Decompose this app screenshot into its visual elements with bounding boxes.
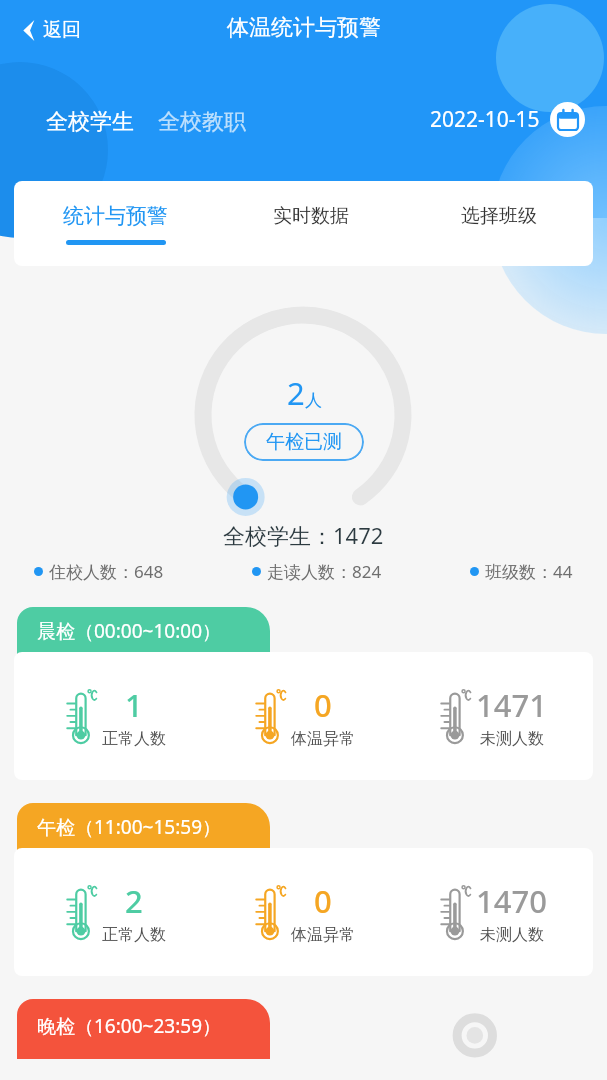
staticText: 全校教职 <box>158 108 246 136</box>
staticText: 班级数：44 <box>485 560 573 583</box>
staticText: 体温异常 <box>291 925 355 945</box>
staticText: 1 <box>125 684 143 726</box>
button[interactable]: 晚检（16:00~23:59） <box>17 999 270 1059</box>
staticText: 2022-10-15 <box>430 105 540 134</box>
staticText: 午检已测 <box>266 430 342 454</box>
staticText: 体温统计与预警 <box>227 14 381 42</box>
button[interactable]: Select date <box>426 98 589 141</box>
button[interactable]: 实时数据 <box>217 181 405 266</box>
staticText: 1471 <box>476 684 547 726</box>
staticText: 体温异常 <box>291 729 355 749</box>
staticText: 全校学生 <box>46 108 134 136</box>
button[interactable]: 1 <box>14 652 593 780</box>
staticText: 人 <box>305 390 322 411</box>
button[interactable]: 全校学生 <box>34 96 146 148</box>
staticText: 2 <box>287 372 305 414</box>
button[interactable]: 统计与预警 <box>14 181 217 266</box>
staticText: 正常人数 <box>102 729 166 749</box>
staticText: 选择班级 <box>461 204 537 228</box>
staticText: 走读人数：824 <box>267 560 382 583</box>
staticText: 2 <box>125 880 143 922</box>
staticText: 1470 <box>476 880 547 922</box>
staticText: 住校人数：648 <box>49 560 164 583</box>
staticText: 返回 <box>43 18 81 42</box>
staticText: 0 <box>314 880 332 922</box>
staticText: 全校学生：1472 <box>223 520 384 550</box>
staticText: 晨检（00:00~10:00） <box>37 618 221 644</box>
staticText: 未测人数 <box>480 925 544 945</box>
staticText: 统计与预警 <box>63 203 168 229</box>
staticText: 未测人数 <box>480 729 544 749</box>
button[interactable]: 2 <box>14 848 593 976</box>
button[interactable]: 午检已测 <box>244 423 364 461</box>
button[interactable]: 返回 <box>10 6 93 54</box>
staticText: 实时数据 <box>273 204 349 228</box>
staticText: 午检（11:00~15:59） <box>37 814 221 840</box>
button[interactable]: 选择班级 <box>405 181 593 266</box>
staticText: 正常人数 <box>102 925 166 945</box>
staticText: 晚检（16:00~23:59） <box>37 1013 221 1039</box>
staticText: 0 <box>314 684 332 726</box>
button[interactable]: 全校教职 <box>146 96 258 148</box>
